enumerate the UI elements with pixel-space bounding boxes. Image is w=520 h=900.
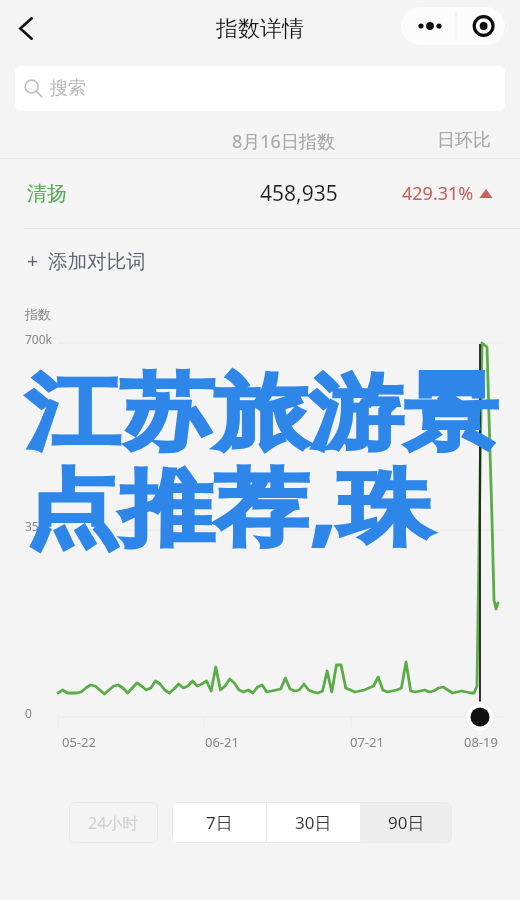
button[interactable]: 清扬	[0, 159, 520, 228]
staticText: 30日	[295, 811, 332, 834]
button[interactable]: 搜索	[15, 66, 505, 111]
button[interactable]: 30日	[267, 802, 360, 843]
staticText: 指数详情	[216, 15, 304, 43]
staticText: 07-21	[350, 733, 384, 751]
staticText: 江苏旅游景	[25, 362, 498, 465]
staticText: + 添加对比词	[27, 247, 146, 274]
staticText: 8月16日指数	[232, 129, 335, 154]
button[interactable]: More options	[400, 6, 456, 46]
staticText: 05-22	[62, 733, 96, 751]
staticText: 08-19	[464, 733, 498, 751]
button[interactable]: 24小时	[69, 802, 158, 843]
staticText: 0	[25, 705, 32, 721]
staticText: 350k	[25, 518, 53, 534]
button[interactable]: Back	[0, 2, 52, 54]
staticText: 700k	[25, 331, 53, 347]
staticText: 点推荐,珠	[25, 449, 433, 561]
staticText: 7日	[206, 811, 233, 834]
staticText: 06-21	[205, 733, 239, 751]
staticText: 24小时	[88, 812, 139, 834]
staticText: 搜索	[50, 77, 86, 100]
button[interactable]: + 添加对比词	[0, 229, 520, 291]
staticText: 90日	[388, 811, 425, 834]
staticText: 458,935	[260, 179, 338, 208]
staticText: 指数	[25, 306, 51, 322]
staticText: 429.31%	[402, 181, 474, 206]
staticText: 日环比	[437, 129, 491, 152]
button[interactable]: 7日	[172, 802, 266, 843]
button[interactable]: 90日	[361, 802, 452, 843]
button[interactable]: Close mini program	[456, 6, 506, 46]
staticText: 清扬	[27, 181, 67, 206]
